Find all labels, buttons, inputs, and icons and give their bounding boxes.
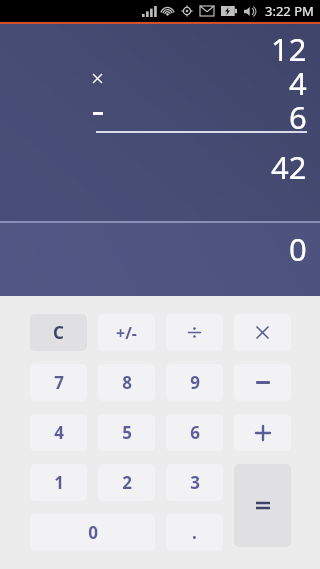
staticText: 4 [54, 421, 64, 444]
button[interactable]: . [166, 514, 223, 551]
staticText: 1 [54, 471, 64, 494]
button[interactable]: 5 [98, 414, 155, 451]
staticText: 5 [122, 421, 132, 444]
staticText: 7 [54, 371, 64, 394]
staticText: 42 [271, 146, 307, 188]
button[interactable]: Minus [234, 364, 291, 401]
other: Location [181, 5, 193, 17]
other: Battery charging [221, 6, 237, 16]
staticText: 2 [122, 471, 132, 494]
staticText: 0 [88, 521, 98, 544]
button[interactable]: 2 [98, 464, 155, 501]
other: Email [200, 6, 214, 16]
other: Wi-Fi [161, 5, 174, 17]
staticText: . [192, 521, 197, 544]
button[interactable]: 7 [30, 364, 87, 401]
staticText: 12 [271, 28, 307, 70]
staticText: +/- [116, 322, 137, 344]
button[interactable]: 8 [98, 364, 155, 401]
button[interactable]: C [30, 314, 87, 351]
staticText: 4 [289, 62, 307, 104]
staticText: 8 [122, 371, 132, 394]
button[interactable]: Equals [234, 464, 291, 547]
staticText: 6 [190, 421, 200, 444]
other: Volume [244, 6, 257, 17]
staticText: 3 [190, 471, 200, 494]
button[interactable]: 9 [166, 364, 223, 401]
button[interactable]: 0 [30, 514, 155, 551]
button[interactable]: 3 [166, 464, 223, 501]
button[interactable]: 6 [166, 414, 223, 451]
staticText: 0 [289, 228, 307, 270]
button[interactable]: 4 [30, 414, 87, 451]
staticText: C [53, 321, 64, 344]
staticText: 6 [289, 96, 307, 138]
staticText: 9 [190, 371, 200, 394]
staticText: 3:22 PM [265, 2, 314, 20]
button[interactable]: +/- [98, 314, 155, 351]
button[interactable]: Divide [166, 314, 223, 351]
button[interactable]: Multiply [234, 314, 291, 351]
button[interactable]: 1 [30, 464, 87, 501]
other: Signal strength [142, 6, 154, 17]
button[interactable]: Plus [234, 414, 291, 451]
